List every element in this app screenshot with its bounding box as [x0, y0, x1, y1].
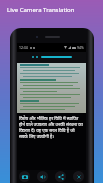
staticText: 94% [77, 45, 84, 50]
button[interactable]: Share [55, 171, 66, 182]
button[interactable]: Camera [19, 171, 30, 182]
staticText: Live Camera Translation [7, 6, 75, 14]
staticText: 12:34 [19, 45, 28, 50]
button[interactable]: Listen [37, 171, 48, 182]
staticText: विशेष और भौतिक हर विधि में स्थापित होने … [19, 115, 84, 139]
button[interactable]: Close [73, 171, 84, 182]
